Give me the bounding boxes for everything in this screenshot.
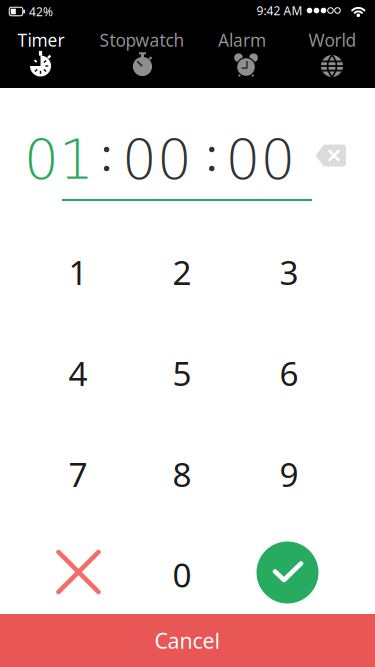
button[interactable]: Alarm: [187, 20, 281, 88]
button[interactable]: 2: [136, 226, 228, 318]
button[interactable]: Stopwatch: [94, 20, 187, 88]
staticText: 9:42 AM: [256, 2, 302, 18]
staticText: Alarm: [218, 28, 266, 51]
button[interactable]: 7: [32, 428, 124, 520]
button[interactable]: 9: [243, 428, 335, 520]
staticText: 9: [279, 452, 298, 496]
staticText: 0: [172, 552, 191, 597]
button[interactable]: Cancel: [0, 614, 375, 667]
staticText: World: [308, 28, 356, 51]
staticText: Stopwatch: [99, 28, 184, 51]
button[interactable]: 4: [32, 327, 124, 419]
staticText: 1: [68, 250, 87, 294]
staticText: Cancel: [154, 626, 220, 655]
button[interactable]: 1: [32, 226, 124, 318]
button[interactable]: Clear: [32, 526, 124, 618]
button[interactable]: 5: [136, 327, 228, 419]
button[interactable]: Timer: [0, 20, 94, 88]
button[interactable]: World: [281, 20, 375, 88]
staticText: 00: [225, 128, 295, 191]
staticText: 3: [279, 250, 298, 294]
staticText: 42%: [29, 3, 53, 19]
staticText: 4: [68, 351, 87, 395]
staticText: 5: [172, 351, 191, 395]
staticText: Timer: [17, 28, 64, 51]
button[interactable]: 3: [243, 226, 335, 318]
staticText: 7: [68, 452, 87, 496]
staticText: 2: [172, 250, 191, 294]
staticText: 00: [122, 128, 192, 191]
staticText: 8: [172, 452, 191, 496]
button[interactable]: 0: [136, 528, 228, 620]
button[interactable]: 8: [136, 428, 228, 520]
staticText: 01: [24, 128, 94, 191]
staticText: 6: [279, 351, 298, 395]
button[interactable]: Delete: [315, 144, 346, 167]
button[interactable]: 6: [243, 327, 335, 419]
button[interactable]: Start: [241, 526, 333, 618]
